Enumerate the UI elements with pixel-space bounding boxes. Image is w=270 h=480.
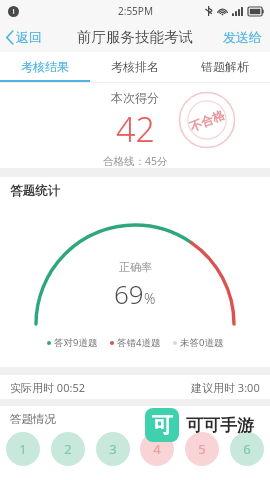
staticText: 42 bbox=[116, 106, 155, 152]
staticText: 答题情况 bbox=[10, 412, 56, 426]
staticText: 1 bbox=[19, 440, 27, 458]
staticText: 返回 bbox=[16, 29, 42, 45]
staticText: 可 bbox=[152, 412, 173, 438]
staticText: 未答0道题 bbox=[180, 336, 224, 349]
staticText: 答题统计 bbox=[10, 183, 60, 199]
staticText: 2:55PM bbox=[118, 4, 153, 18]
button[interactable]: 错题解析 bbox=[180, 52, 270, 80]
button[interactable]: 2 bbox=[51, 432, 85, 466]
staticText: 5 bbox=[198, 440, 206, 458]
staticText: 发送给 bbox=[223, 29, 262, 45]
staticText: 不合格 bbox=[187, 107, 226, 134]
staticText: 答错4道题 bbox=[117, 336, 161, 349]
staticText: 可可手游 bbox=[186, 415, 254, 436]
button[interactable]: 4 bbox=[140, 432, 174, 466]
staticText: 考核排名 bbox=[111, 59, 159, 74]
staticText: 合格线：45分 bbox=[103, 154, 168, 168]
button[interactable]: 返回 bbox=[0, 25, 50, 49]
staticText: 正确率 bbox=[119, 260, 152, 274]
staticText: 69 bbox=[114, 276, 144, 311]
button[interactable]: 考核排名 bbox=[90, 52, 180, 80]
staticText: 2 bbox=[64, 440, 72, 458]
staticText: % bbox=[144, 289, 156, 308]
button[interactable]: 发送给 bbox=[215, 24, 270, 50]
staticText: 答对9道题 bbox=[54, 336, 98, 349]
button[interactable]: 5 bbox=[185, 432, 219, 466]
button[interactable]: 6 bbox=[230, 432, 264, 466]
staticText: 实际用时 00:52 bbox=[10, 380, 85, 395]
button[interactable]: 3 bbox=[96, 432, 130, 466]
staticText: 考核结果 bbox=[21, 59, 69, 74]
staticText: 3 bbox=[109, 440, 117, 458]
staticText: 本次得分 bbox=[111, 90, 159, 105]
staticText: 4 bbox=[153, 440, 161, 458]
staticText: 错题解析 bbox=[201, 59, 249, 74]
staticText: 建议用时 3:00 bbox=[191, 380, 260, 395]
button[interactable]: 1 bbox=[6, 432, 40, 466]
staticText: 前厅服务技能考试 bbox=[77, 28, 193, 46]
staticText: 6 bbox=[243, 440, 251, 458]
button[interactable]: 考核结果 bbox=[0, 52, 90, 80]
